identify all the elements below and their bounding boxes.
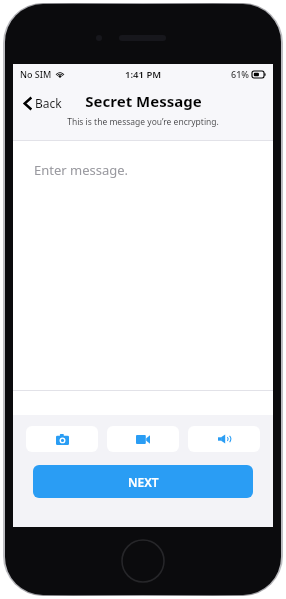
button[interactable]: Back <box>21 92 65 114</box>
staticText: Secret Message <box>85 91 202 111</box>
staticText: Back <box>35 95 62 111</box>
staticText: Enter message. <box>34 161 129 179</box>
button[interactable]: Audio <box>188 426 260 452</box>
staticText: No SIM <box>20 68 52 80</box>
staticText: 1:41 PM <box>125 68 162 81</box>
button[interactable]: Enter message. <box>13 141 273 390</box>
staticText: NEXT <box>128 474 159 490</box>
staticText: 61% <box>231 68 249 80</box>
button[interactable]: Camera <box>26 426 98 452</box>
button[interactable]: Video <box>107 426 179 452</box>
staticText: This is the message you’re encrypting. <box>67 116 219 128</box>
button[interactable]: NEXT <box>33 465 253 498</box>
